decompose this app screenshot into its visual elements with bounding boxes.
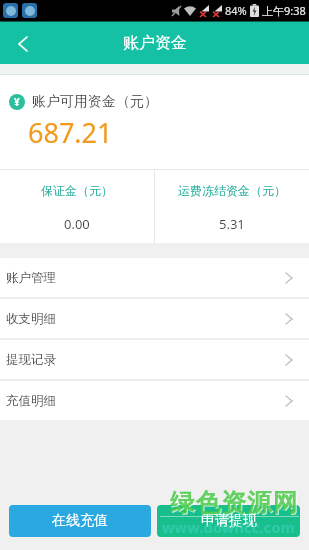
button[interactable]: 账户管理 (0, 258, 309, 297)
button[interactable]: 保证金（元） (0, 170, 154, 243)
staticText: 84% (225, 3, 247, 18)
staticText: 0.00 (64, 215, 90, 233)
staticText: 提现记录 (6, 352, 56, 368)
button[interactable]: 充值明细 (0, 381, 309, 420)
staticText: 绿色资源网 (171, 488, 300, 519)
staticText: 充值明细 (6, 393, 56, 409)
button[interactable] (0, 23, 46, 64)
staticText: 账户管理 (6, 270, 56, 286)
staticText: 账户可用资金（元） (32, 93, 158, 111)
staticText: 运费冻结资金（元） (178, 183, 286, 198)
staticText: 保证金（元） (41, 183, 113, 198)
staticText: 5.31 (219, 215, 245, 233)
button[interactable]: 运费冻结资金（元） (155, 170, 309, 243)
staticText: www.downcc.com (162, 517, 296, 537)
staticText: 收支明细 (6, 311, 56, 327)
staticText: 绿色资源网 (170, 487, 299, 518)
staticText: ¥ (14, 95, 20, 109)
button[interactable]: 提现记录 (0, 340, 309, 379)
staticText: 在线充值 (52, 512, 108, 530)
button[interactable]: 收支明细 (0, 299, 309, 338)
staticText: 上午9:38 (262, 3, 306, 18)
staticText: 687.21 (28, 114, 113, 151)
staticText: 账户资金 (123, 33, 187, 53)
button[interactable]: 在线充值 (9, 505, 151, 537)
staticText: 申请提现 (201, 512, 257, 530)
button[interactable]: 申请提现 (157, 505, 300, 537)
